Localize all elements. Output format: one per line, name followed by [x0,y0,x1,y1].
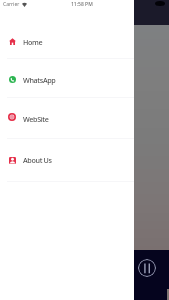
button[interactable]: Pause [138,259,156,277]
button[interactable]: Home [0,23,134,61]
button[interactable]: WebSite [0,100,134,138]
staticText: Home [23,37,43,47]
staticText: WebSite [23,114,49,124]
button[interactable]: About Us [0,141,134,179]
staticText: About Us [23,155,52,165]
staticText: WhatsApp [23,75,56,85]
staticText: Carrier [3,1,20,8]
button[interactable]: WhatsApp [0,61,134,99]
staticText: 11:58 PM [71,1,93,8]
